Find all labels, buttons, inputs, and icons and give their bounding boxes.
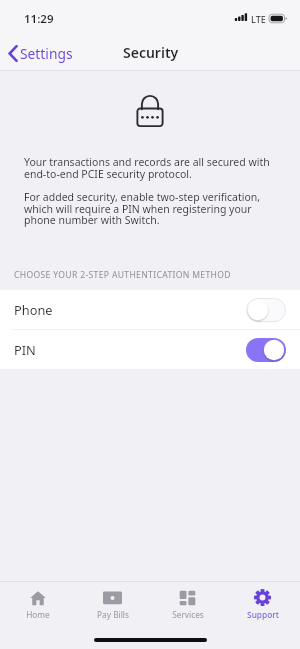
staticText: Home xyxy=(26,609,50,620)
staticText: Security xyxy=(123,43,179,62)
button[interactable]: Support xyxy=(225,582,300,627)
button[interactable]: Services xyxy=(150,582,225,627)
staticText: Services xyxy=(172,609,204,620)
button[interactable]: Enabled xyxy=(246,338,286,362)
staticText: Phone xyxy=(14,301,53,318)
button[interactable]: Settings xyxy=(0,42,81,65)
staticText: CHOOSE YOUR 2-STEP AUTHENTICATION METHOD xyxy=(14,269,231,281)
staticText: Pay Bills xyxy=(97,609,129,620)
staticText: For added security, enable two-step veri… xyxy=(24,190,277,227)
button[interactable]: Disabled xyxy=(246,298,286,322)
staticText: Your transactions and records are all se… xyxy=(24,155,277,181)
staticText: Support xyxy=(247,609,279,620)
staticText: Settings xyxy=(20,44,73,63)
button[interactable]: Phone xyxy=(0,290,300,329)
staticText: LTE xyxy=(251,13,266,25)
button[interactable]: PIN xyxy=(0,330,300,369)
button[interactable]: Pay Bills xyxy=(75,582,150,627)
staticText: 11:29 xyxy=(24,11,54,27)
staticText: PIN xyxy=(14,341,36,358)
button[interactable]: Home xyxy=(0,582,75,627)
